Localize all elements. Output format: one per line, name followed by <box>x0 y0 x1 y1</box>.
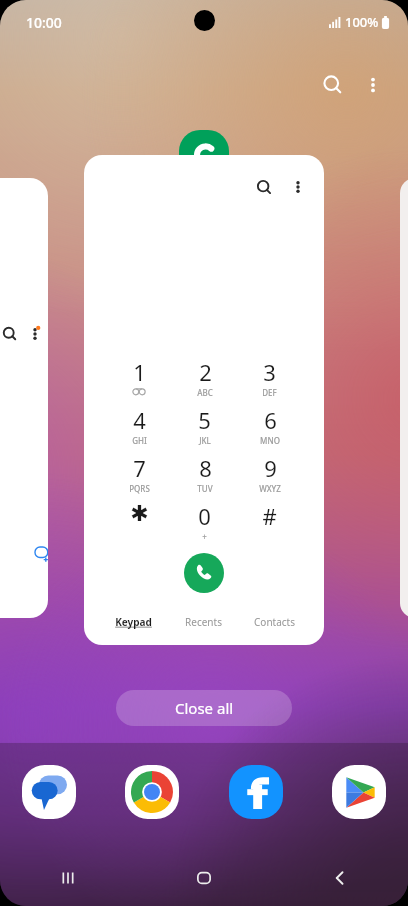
button[interactable]: Call <box>184 553 224 593</box>
staticText: 8 <box>199 453 212 483</box>
staticText: Close all <box>175 698 234 718</box>
button[interactable]: Play Store <box>332 765 386 819</box>
button[interactable]: More options <box>356 68 390 102</box>
staticText: PQRS <box>129 483 150 494</box>
staticText: + <box>202 531 207 542</box>
button[interactable]: 8 <box>172 453 237 501</box>
button[interactable]: More options <box>286 175 310 199</box>
button[interactable]: Search <box>316 68 350 102</box>
staticText: 0 <box>198 501 211 531</box>
staticText: 9 <box>264 453 277 483</box>
button[interactable]: # <box>237 501 302 549</box>
staticText: 10:00 <box>26 13 62 32</box>
button[interactable]: 7 <box>106 453 172 501</box>
staticText: JKL <box>199 435 211 446</box>
staticText: DEF <box>262 387 277 398</box>
button[interactable]: Messages <box>22 765 76 819</box>
staticText: 2 <box>199 357 212 387</box>
staticText: TUV <box>197 483 213 494</box>
button[interactable]: Recents <box>0 850 136 906</box>
staticText: ✱ <box>130 501 149 527</box>
staticText: 100% <box>345 13 379 31</box>
button[interactable]: 2 <box>172 357 237 405</box>
staticText: 7 <box>133 453 146 483</box>
button[interactable]: 5 <box>172 405 237 453</box>
button[interactable]: Search <box>84 155 324 645</box>
button[interactable]: Keypad <box>98 611 168 633</box>
button[interactable]: Facebook <box>229 765 283 819</box>
button[interactable]: Close all <box>116 690 292 726</box>
button[interactable]: 1 <box>106 357 172 405</box>
button[interactable]: Next app <box>400 178 408 618</box>
staticText: WXYZ <box>259 483 281 494</box>
staticText: 4 <box>133 405 146 435</box>
staticText: Contacts <box>254 615 295 629</box>
staticText: GHI <box>132 435 147 446</box>
staticText: 3 <box>263 357 276 387</box>
button[interactable] <box>0 178 48 618</box>
button[interactable]: Search <box>252 175 276 199</box>
staticText: 5 <box>198 405 211 435</box>
button[interactable]: 3 <box>237 357 302 405</box>
staticText: Keypad <box>115 615 152 629</box>
button[interactable]: ✱ <box>106 501 172 549</box>
button[interactable]: Recents <box>168 611 239 633</box>
staticText: 6 <box>264 405 277 435</box>
button[interactable]: 9 <box>237 453 302 501</box>
button[interactable]: Chrome <box>125 765 179 819</box>
staticText: ABC <box>197 387 213 398</box>
button[interactable]: 4 <box>106 405 172 453</box>
button[interactable]: Contacts <box>239 611 310 633</box>
button[interactable]: 6 <box>237 405 302 453</box>
staticText: 1 <box>133 357 146 387</box>
staticText: MNO <box>260 435 280 446</box>
button[interactable]: 0 <box>172 501 237 549</box>
staticText: # <box>262 501 277 531</box>
staticText: Recents <box>185 615 222 629</box>
button[interactable]: Back <box>272 850 408 906</box>
button[interactable]: Home <box>136 850 272 906</box>
